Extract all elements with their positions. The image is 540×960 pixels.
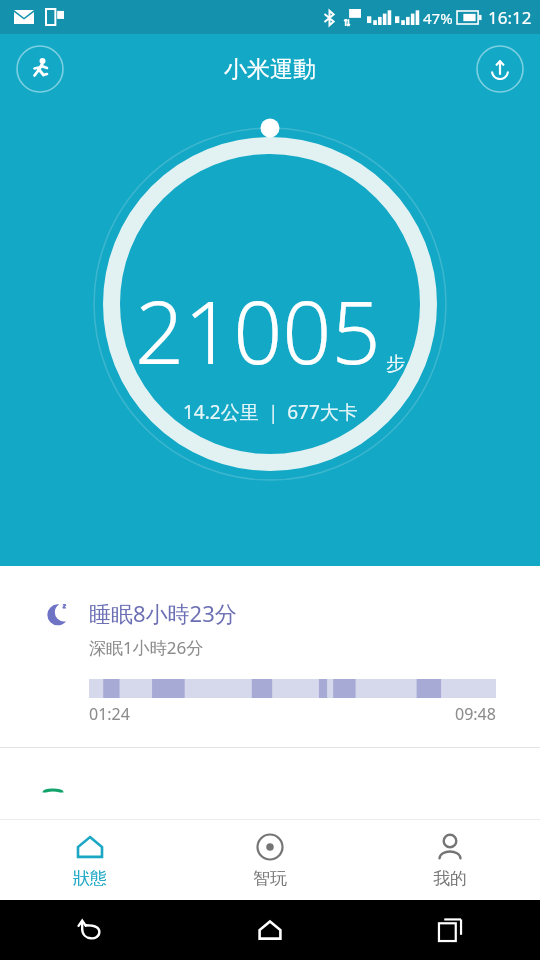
- button[interactable]: [0, 748, 540, 798]
- staticText: 16:12: [488, 6, 532, 29]
- button[interactable]: 睡眠8小時23分: [0, 566, 540, 747]
- button[interactable]: 狀態: [0, 822, 180, 899]
- staticText: 睡眠8小時23分: [89, 598, 237, 628]
- staticText: 01:24: [89, 703, 130, 725]
- staticText: 深眠1小時26分: [89, 636, 204, 659]
- staticText: 狀態: [73, 868, 107, 889]
- staticText: 小米運動: [224, 55, 316, 84]
- staticText: 智玩: [253, 868, 287, 889]
- staticText: 14.2公里 ｜ 677大卡: [183, 399, 358, 425]
- button[interactable]: Home: [180, 900, 360, 960]
- button[interactable]: Share: [476, 45, 524, 93]
- staticText: 步: [386, 352, 405, 376]
- button[interactable]: Recents: [360, 900, 540, 960]
- staticText: 09:48: [455, 703, 496, 725]
- button[interactable]: 智玩: [180, 822, 360, 899]
- button[interactable]: Run: [16, 45, 64, 93]
- button[interactable]: 21005: [0, 104, 540, 566]
- staticText: 47%: [423, 8, 453, 28]
- staticText: 21005: [135, 272, 381, 389]
- staticText: 我的: [433, 868, 467, 889]
- button[interactable]: Back: [0, 900, 180, 960]
- button[interactable]: 我的: [360, 822, 540, 899]
